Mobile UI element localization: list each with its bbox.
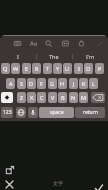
staticText: N bbox=[71, 94, 76, 101]
staticText: I bbox=[17, 53, 19, 60]
staticText: The bbox=[49, 53, 59, 60]
staticText: R bbox=[35, 65, 39, 72]
staticText: D bbox=[29, 80, 34, 87]
button[interactable]: H bbox=[58, 78, 67, 89]
button[interactable]: Share bbox=[4, 164, 15, 175]
button[interactable]: T bbox=[43, 63, 52, 74]
staticText: W bbox=[13, 65, 19, 72]
staticText: Z bbox=[20, 94, 24, 101]
button[interactable]: Shift bbox=[1, 92, 13, 103]
staticText: J bbox=[73, 80, 75, 87]
staticText: I bbox=[78, 65, 80, 72]
staticText: space bbox=[50, 109, 64, 116]
staticText: O bbox=[86, 65, 91, 72]
button[interactable]: Sticker bbox=[62, 40, 69, 47]
button[interactable]: space bbox=[39, 107, 74, 118]
button[interactable]: C bbox=[37, 92, 46, 103]
staticText: B bbox=[61, 94, 65, 101]
staticText: X bbox=[30, 94, 34, 101]
button[interactable]: X bbox=[27, 92, 36, 103]
button[interactable]: Done bbox=[93, 182, 104, 190]
button[interactable]: A bbox=[6, 78, 15, 89]
button[interactable]: G bbox=[48, 78, 57, 89]
button[interactable]: K bbox=[79, 78, 88, 89]
button[interactable]: P bbox=[95, 63, 104, 74]
button[interactable]: I bbox=[0, 51, 36, 62]
button[interactable]: V bbox=[48, 92, 57, 103]
button[interactable]: Q bbox=[1, 63, 10, 74]
staticText: C bbox=[40, 94, 44, 101]
staticText: S bbox=[20, 80, 24, 87]
staticText: U bbox=[65, 65, 70, 72]
button[interactable]: M bbox=[79, 92, 88, 103]
button[interactable]: L bbox=[89, 78, 98, 89]
button[interactable]: Switch language bbox=[16, 107, 26, 118]
button[interactable]: Settings bbox=[78, 40, 85, 47]
button[interactable]: return bbox=[75, 107, 105, 118]
button[interactable]: 文字 bbox=[51, 179, 64, 187]
button[interactable]: D bbox=[27, 78, 36, 89]
button[interactable]: F bbox=[37, 78, 46, 89]
button[interactable]: The bbox=[36, 51, 72, 62]
button[interactable]: Voice input bbox=[28, 107, 38, 118]
button[interactable]: Close bbox=[4, 179, 15, 190]
button[interactable]: Backspace bbox=[91, 92, 105, 103]
staticText: I'm bbox=[86, 53, 95, 60]
button[interactable]: More bbox=[97, 40, 104, 47]
staticText: L bbox=[92, 80, 95, 87]
staticText: Q bbox=[3, 65, 8, 72]
button[interactable]: Search bbox=[45, 40, 52, 47]
staticText: 文字 bbox=[53, 180, 63, 186]
button[interactable]: Z bbox=[17, 92, 26, 103]
button[interactable]: W bbox=[11, 63, 20, 74]
button[interactable]: S bbox=[17, 78, 26, 89]
button[interactable]: U bbox=[63, 63, 72, 74]
staticText: M bbox=[81, 94, 86, 101]
staticText: G bbox=[50, 80, 55, 87]
button[interactable]: O bbox=[84, 63, 93, 74]
staticText: H bbox=[60, 80, 65, 87]
button[interactable]: J bbox=[69, 78, 78, 89]
button[interactable]: B bbox=[58, 92, 67, 103]
staticText: K bbox=[82, 80, 86, 87]
staticText: E bbox=[25, 65, 29, 72]
staticText: A bbox=[9, 80, 13, 87]
button[interactable]: 123 bbox=[1, 107, 13, 118]
button[interactable]: N bbox=[69, 92, 78, 103]
staticText: P bbox=[98, 65, 102, 72]
staticText: 123 bbox=[3, 109, 12, 116]
staticText: Y bbox=[56, 65, 60, 72]
staticText: V bbox=[51, 94, 55, 101]
button[interactable]: Keyboard layout bbox=[14, 40, 21, 47]
button[interactable]: I'm bbox=[72, 51, 108, 62]
button[interactable]: I bbox=[74, 63, 83, 74]
button[interactable]: Y bbox=[53, 63, 62, 74]
staticText: F bbox=[40, 80, 43, 87]
staticText: return bbox=[83, 109, 98, 116]
button[interactable]: Text style bbox=[30, 40, 37, 47]
button[interactable]: E bbox=[22, 63, 31, 74]
staticText: T bbox=[46, 65, 50, 72]
button[interactable]: R bbox=[32, 63, 41, 74]
